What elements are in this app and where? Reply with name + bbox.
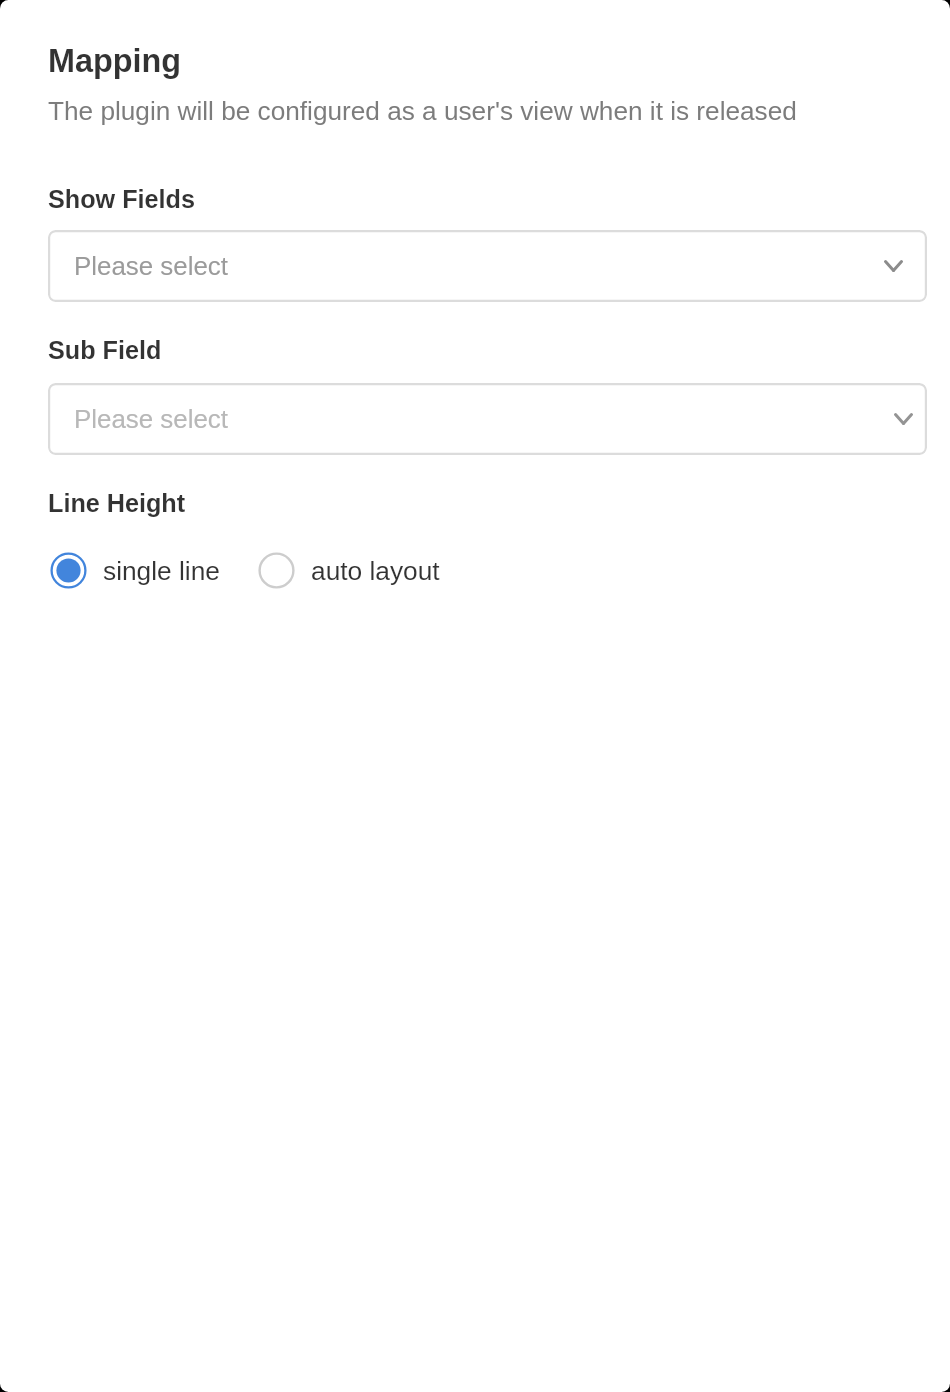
staticText: Please select	[74, 252, 228, 281]
button[interactable]: auto layout	[256, 550, 440, 591]
staticText: single line	[103, 556, 220, 585]
staticText: Show Fields	[48, 185, 195, 213]
button[interactable]: Please select	[48, 383, 927, 455]
button[interactable]: Please select	[48, 230, 927, 302]
staticText: Line Height	[48, 489, 186, 517]
staticText: auto layout	[311, 556, 440, 585]
staticText: Please select	[74, 405, 228, 434]
staticText: Sub Field	[48, 336, 162, 364]
staticText: Mapping	[48, 43, 182, 79]
other: Open Show Fields options	[884, 260, 903, 272]
button[interactable]: single line	[48, 550, 220, 591]
other: Open Sub Field options	[894, 413, 913, 425]
staticText: The plugin will be configured as a user'…	[48, 96, 797, 125]
